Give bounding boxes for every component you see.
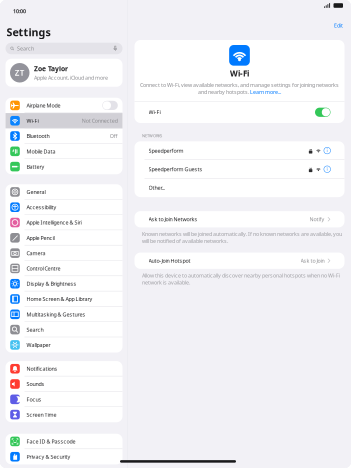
button[interactable]: Search [5, 322, 122, 337]
staticText: Bluetooth [26, 132, 49, 140]
staticText: General [26, 188, 45, 195]
button[interactable]: Apple Pencil [5, 230, 122, 245]
button[interactable]: Apple Intelligence & Siri [5, 215, 122, 230]
staticText: Control Centre [26, 265, 60, 272]
staticText: Accessibility [26, 204, 56, 211]
staticText: ZT [15, 67, 25, 78]
staticText: Sounds [26, 380, 44, 388]
button[interactable]: ZT [5, 59, 122, 87]
button[interactable]: Focus [5, 392, 122, 407]
button[interactable]: Face ID & Passcode [5, 434, 122, 449]
button[interactable]: Ask to Join Networks [134, 211, 344, 227]
button[interactable]: Mobile Data [5, 144, 122, 159]
staticText: Apple Account, iCloud and more [34, 74, 108, 81]
button[interactable]: Edit [331, 20, 346, 31]
staticText: Edit [334, 22, 343, 29]
button[interactable]: Speedperform Guests [134, 160, 344, 178]
staticText: Wallpaper [26, 341, 50, 348]
staticText: Display & Brightness [26, 280, 76, 287]
staticText: Focus [26, 396, 41, 403]
staticText: Battery [26, 163, 44, 170]
button[interactable]: Battery [5, 159, 122, 174]
staticText: Off [110, 132, 118, 140]
button[interactable]: Speedperform [134, 141, 344, 160]
button[interactable]: Other... [134, 178, 344, 197]
staticText: Wi-Fi [230, 68, 249, 79]
staticText: Search [17, 45, 34, 52]
staticText: Mobile Data [26, 148, 55, 155]
button[interactable]: Auto-Join Hotspot [134, 253, 344, 269]
staticText: Speedperform [148, 147, 183, 154]
staticText: Learn more... [250, 88, 281, 95]
staticText: NETWORKS [142, 133, 162, 138]
staticText: Search [26, 326, 43, 333]
staticText: Ask to Join [300, 257, 324, 264]
button[interactable]: Accessibility [5, 200, 122, 215]
button[interactable]: Wi-Fi [5, 113, 122, 128]
staticText: Known networks will be joined automatica… [142, 230, 342, 245]
button[interactable]: Airplane Mode [5, 98, 122, 113]
button[interactable]: Control Centre [5, 261, 122, 276]
button[interactable]: General [5, 184, 122, 200]
staticText: Notifications [26, 365, 57, 372]
staticText: Camera [26, 250, 45, 257]
staticText: Speedperform Guests [148, 166, 202, 173]
button[interactable]: Screen Time [5, 407, 122, 422]
staticText: Zoe Taylor [34, 64, 68, 73]
staticText: Apple Pencil [26, 234, 54, 241]
button[interactable]: Privacy & Security [5, 449, 122, 464]
staticText: Wi-Fi [26, 117, 38, 124]
button[interactable]: Camera [5, 245, 122, 261]
staticText: Multitasking & Gestures [26, 311, 85, 318]
staticText: Notify [309, 216, 324, 223]
staticText: Home Screen & App Library [26, 295, 92, 303]
staticText: Allow this device to automatically disco… [142, 272, 340, 286]
staticText: Screen Time [26, 411, 56, 418]
staticText: Other... [148, 184, 164, 191]
button[interactable]: Multitasking & Gestures [5, 307, 122, 322]
staticText: Wi-Fi [148, 109, 160, 116]
staticText: Ask to Join Networks [148, 216, 197, 223]
button[interactable]: Bluetooth [5, 128, 122, 144]
button[interactable]: Home Screen & App Library [5, 291, 122, 307]
button[interactable]: Display & Brightness [5, 276, 122, 291]
staticText: Airplane Mode [26, 102, 60, 109]
staticText: Settings [7, 25, 51, 39]
staticText: Connect to Wi-Fi, view available network… [140, 81, 339, 88]
button[interactable]: Sounds [5, 376, 122, 392]
staticText: Face ID & Passcode [26, 438, 75, 445]
staticText: and nearby hotspots. [198, 88, 250, 95]
button[interactable]: Wallpaper [5, 337, 122, 353]
button[interactable]: Notifications [5, 361, 122, 376]
staticText: Auto-Join Hotspot [148, 257, 190, 264]
staticText: 10:00 [13, 8, 26, 15]
staticText: Apple Intelligence & Siri [26, 219, 81, 226]
staticText: Privacy & Security [26, 453, 70, 460]
staticText: Not Connected [82, 117, 118, 124]
